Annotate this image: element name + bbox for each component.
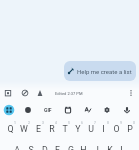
button[interactable]: Voice input bbox=[120, 103, 134, 117]
staticText: D bbox=[42, 145, 48, 150]
button[interactable]: S bbox=[24, 143, 38, 150]
button[interactable]: D bbox=[38, 143, 51, 150]
button[interactable]: Keyboard tools bbox=[2, 103, 16, 117]
button[interactable]: K bbox=[103, 143, 116, 150]
staticText: E bbox=[36, 124, 41, 134]
staticText: W bbox=[20, 124, 28, 134]
staticText: 2 bbox=[28, 121, 30, 125]
staticText: O bbox=[113, 124, 120, 134]
button[interactable]: Format bbox=[35, 88, 45, 98]
staticText: Q bbox=[7, 124, 14, 134]
button[interactable]: E bbox=[31, 122, 45, 135]
staticText: Y bbox=[75, 124, 81, 134]
button[interactable]: T bbox=[58, 122, 71, 135]
button[interactable]: Q bbox=[3, 122, 17, 135]
staticText: A bbox=[14, 145, 20, 150]
button[interactable]: R bbox=[45, 122, 58, 135]
button[interactable]: Settings bbox=[100, 103, 114, 117]
staticText: U bbox=[88, 124, 94, 134]
staticText: F bbox=[55, 145, 60, 150]
button[interactable]: Help me create a list bbox=[64, 61, 136, 81]
staticText: R bbox=[49, 124, 55, 134]
button[interactable]: J bbox=[90, 143, 103, 150]
button[interactable]: I bbox=[97, 122, 110, 135]
staticText: 5 bbox=[68, 121, 70, 125]
button[interactable]: Draw bbox=[20, 88, 30, 98]
staticText: P bbox=[127, 124, 133, 134]
button[interactable]: Handwriting bbox=[81, 103, 95, 117]
staticText: 8 bbox=[107, 121, 109, 125]
button[interactable]: U bbox=[84, 122, 97, 135]
staticText: GIF bbox=[44, 107, 52, 113]
staticText: 4 bbox=[55, 121, 57, 125]
button[interactable]: Add bbox=[3, 88, 13, 98]
staticText: 9 bbox=[120, 121, 122, 125]
button[interactable]: GIF bbox=[41, 103, 55, 117]
button[interactable]: G bbox=[64, 143, 77, 150]
staticText: L bbox=[120, 145, 125, 150]
button[interactable]: Y bbox=[71, 122, 84, 135]
staticText: 0 bbox=[133, 121, 135, 125]
staticText: 6 bbox=[81, 121, 83, 125]
staticText: S bbox=[28, 145, 34, 150]
staticText: 7 bbox=[94, 121, 96, 125]
staticText: K bbox=[107, 145, 113, 150]
staticText: I bbox=[102, 124, 105, 134]
button[interactable]: H bbox=[77, 143, 90, 150]
button[interactable]: P bbox=[123, 122, 136, 135]
staticText: Help me create a list bbox=[77, 68, 132, 75]
button[interactable]: A bbox=[10, 143, 24, 150]
button[interactable]: Emoji bbox=[21, 103, 35, 117]
button[interactable]: Clipboard bbox=[61, 103, 75, 117]
staticText: T bbox=[62, 124, 68, 134]
staticText: 1 bbox=[14, 121, 16, 125]
button[interactable]: O bbox=[110, 122, 123, 135]
staticText: H bbox=[80, 145, 87, 150]
button[interactable]: F bbox=[51, 143, 64, 150]
button[interactable]: L bbox=[116, 143, 129, 150]
staticText: J bbox=[94, 145, 99, 150]
button[interactable]: More options bbox=[126, 88, 136, 98]
staticText: 3 bbox=[42, 121, 44, 125]
staticText: G bbox=[68, 145, 74, 150]
staticText: Edited 2:37 PM bbox=[55, 91, 83, 96]
button[interactable]: W bbox=[17, 122, 31, 135]
